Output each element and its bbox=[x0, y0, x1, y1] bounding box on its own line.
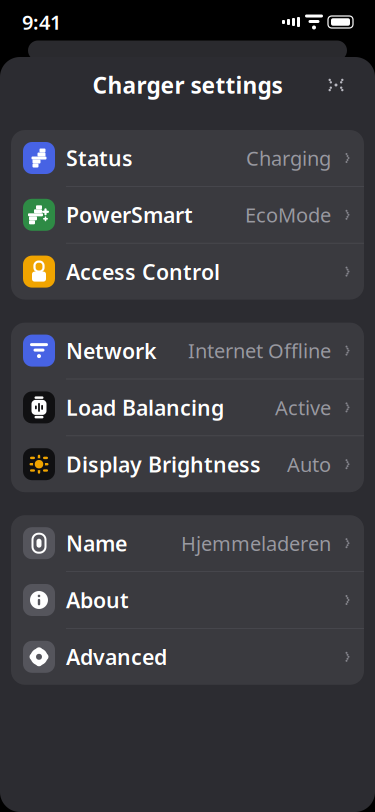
staticText: Charger settings bbox=[92, 70, 282, 100]
button[interactable]: PowerSmart bbox=[11, 187, 364, 243]
staticText: Load Balancing bbox=[66, 393, 224, 421]
staticText: Internet Offline bbox=[188, 337, 331, 364]
button[interactable]: Advanced bbox=[11, 629, 364, 685]
button[interactable]: Close bbox=[314, 63, 358, 107]
button[interactable]: About bbox=[11, 572, 364, 628]
staticText: Active bbox=[275, 394, 331, 421]
staticText: About bbox=[66, 586, 129, 614]
staticText: Access Control bbox=[66, 257, 220, 286]
button[interactable]: Status bbox=[11, 130, 364, 186]
staticText: Advanced bbox=[66, 643, 167, 671]
staticText: 9:41 bbox=[22, 9, 61, 35]
button[interactable]: Load Balancing bbox=[11, 379, 364, 435]
button[interactable]: Access Control bbox=[11, 244, 364, 300]
staticText: Display Brightness bbox=[66, 450, 261, 478]
button[interactable]: Name bbox=[11, 515, 364, 571]
button[interactable]: Network bbox=[11, 323, 364, 379]
staticText: Status bbox=[66, 144, 133, 172]
staticText: EcoMode bbox=[245, 201, 331, 228]
staticText: Name bbox=[66, 529, 127, 557]
button[interactable]: Display Brightness bbox=[11, 436, 364, 492]
staticText: Network bbox=[66, 336, 157, 365]
staticText: PowerSmart bbox=[66, 201, 193, 229]
staticText: Hjemmeladeren bbox=[181, 530, 331, 556]
staticText: Charging bbox=[246, 145, 331, 171]
staticText: Auto bbox=[287, 451, 331, 477]
